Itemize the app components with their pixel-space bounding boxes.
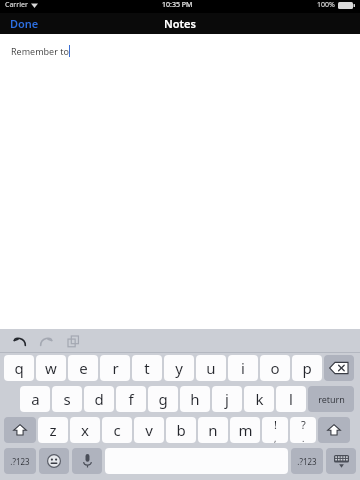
button[interactable]: .?123 xyxy=(4,448,36,474)
button[interactable]: Dictation xyxy=(72,448,102,474)
button[interactable]: m xyxy=(230,417,260,443)
staticText: d xyxy=(94,389,104,409)
button[interactable]: s xyxy=(52,386,82,412)
button[interactable]: ? xyxy=(290,417,316,443)
staticText: Remember to xyxy=(11,45,69,57)
staticText: 100% xyxy=(317,0,335,10)
staticText: f xyxy=(128,389,134,409)
staticText: q xyxy=(14,358,24,378)
button[interactable]: l xyxy=(276,386,306,412)
staticText: b xyxy=(176,420,186,440)
button[interactable]: q xyxy=(4,355,34,381)
button[interactable]: e xyxy=(68,355,98,381)
button[interactable]: c xyxy=(102,417,132,443)
staticText: g xyxy=(158,389,168,409)
staticText: return xyxy=(318,393,345,405)
button[interactable]: d xyxy=(84,386,114,412)
staticText: z xyxy=(49,420,57,440)
staticText: c xyxy=(113,420,121,440)
button[interactable]: Emoji xyxy=(39,448,69,474)
staticText: n xyxy=(208,420,218,440)
staticText: m xyxy=(238,420,253,440)
staticText: p xyxy=(302,358,312,378)
button[interactable]: a xyxy=(20,386,50,412)
button[interactable]: v xyxy=(134,417,164,443)
button[interactable]: k xyxy=(244,386,274,412)
staticText: y xyxy=(175,358,183,378)
staticText: , xyxy=(274,432,277,443)
button[interactable]: j xyxy=(212,386,242,412)
button[interactable]: i xyxy=(228,355,258,381)
button[interactable]: Shift xyxy=(4,417,36,443)
button[interactable]: z xyxy=(38,417,68,443)
button[interactable]: .?123 xyxy=(291,448,323,474)
button[interactable]: h xyxy=(180,386,210,412)
staticText: k xyxy=(255,389,264,409)
button[interactable]: w xyxy=(36,355,66,381)
staticText: Notes xyxy=(164,16,196,31)
button[interactable]: f xyxy=(116,386,146,412)
staticText: j xyxy=(225,389,229,409)
button[interactable]: x xyxy=(70,417,100,443)
staticText: s xyxy=(63,389,71,409)
button[interactable]: u xyxy=(196,355,226,381)
staticText: w xyxy=(45,358,57,378)
button[interactable]: Done xyxy=(6,13,43,34)
staticText: l xyxy=(289,389,293,409)
staticText: ? xyxy=(301,417,306,432)
button[interactable]: Undo xyxy=(8,330,30,352)
staticText: o xyxy=(270,358,280,378)
button[interactable]: n xyxy=(198,417,228,443)
staticText: e xyxy=(79,358,88,378)
staticText: Done xyxy=(10,16,39,31)
button[interactable]: Redo xyxy=(35,330,57,352)
staticText: ! xyxy=(274,417,277,432)
staticText: h xyxy=(190,389,200,409)
button[interactable]: Backspace xyxy=(324,355,354,381)
staticText: t xyxy=(144,358,150,378)
button[interactable]: Hide keyboard xyxy=(326,448,356,474)
button[interactable]: p xyxy=(292,355,322,381)
staticText: x xyxy=(81,420,89,440)
staticText: Carrier xyxy=(5,0,28,10)
button[interactable]: Paste xyxy=(62,330,84,352)
staticText: 10:35 PM xyxy=(162,0,193,10)
button[interactable]: g xyxy=(148,386,178,412)
staticText: u xyxy=(206,358,216,378)
button[interactable]: o xyxy=(260,355,290,381)
button[interactable]: Shift xyxy=(318,417,350,443)
staticText: a xyxy=(31,389,40,409)
staticText: .?123 xyxy=(10,456,30,467)
button[interactable]: ! xyxy=(262,417,288,443)
staticText: r xyxy=(112,358,119,378)
staticText: . xyxy=(302,432,305,443)
staticText: v xyxy=(145,420,153,440)
button[interactable]: b xyxy=(166,417,196,443)
button[interactable]: return xyxy=(308,386,354,412)
button[interactable]: t xyxy=(132,355,162,381)
staticText: i xyxy=(241,358,245,378)
staticText: .?123 xyxy=(297,456,317,467)
button[interactable]: y xyxy=(164,355,194,381)
button[interactable]: r xyxy=(100,355,130,381)
